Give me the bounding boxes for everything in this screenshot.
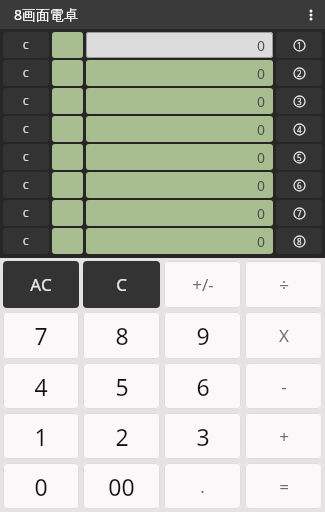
button[interactable]: X [245,312,322,359]
button[interactable]: 0 [86,172,273,198]
button[interactable]: 5 [83,363,160,409]
staticText: 0 [257,120,266,139]
button[interactable]: 4 [3,363,79,409]
button[interactable]: Memory 5 [52,144,83,170]
button[interactable]: Screen 5 [276,144,322,170]
button[interactable]: +/- [164,261,241,308]
staticText: 0 [257,148,266,167]
staticText: + [279,425,289,448]
button[interactable]: Screen 8 [276,228,322,254]
staticText: 2 [115,421,129,452]
button[interactable]: Memory 8 [52,228,83,254]
button[interactable]: C [3,88,49,114]
staticText: ÷ [279,273,289,296]
staticText: 0 [257,176,266,195]
button[interactable]: 7 [3,312,79,359]
staticText: C [23,39,29,51]
staticText: 00 [108,471,135,502]
staticText: = [279,475,289,498]
staticText: 8画面電卓 [14,5,79,24]
button[interactable]: Memory 4 [52,116,83,142]
staticText: 2 [297,68,302,79]
button[interactable]: 3 [164,413,241,459]
staticText: 7 [297,208,302,219]
staticText: AC [30,273,52,296]
staticText: 0 [257,92,266,111]
staticText: 1 [297,40,302,51]
staticText: 6 [297,180,302,191]
button[interactable]: 0 [86,228,273,254]
staticText: 4 [297,124,302,135]
staticText: 0 [257,232,266,251]
button[interactable]: Screen 7 [276,200,322,226]
button[interactable]: C [3,228,49,254]
staticText: C [23,123,29,135]
staticText: . [200,475,205,498]
button[interactable]: = [245,463,322,509]
button[interactable]: C [3,32,49,58]
staticText: C [23,151,29,163]
button[interactable]: . [164,463,241,509]
button[interactable]: 0 [86,200,273,226]
staticText: 6 [196,371,210,402]
button[interactable]: 6 [164,363,241,409]
button[interactable]: Memory 7 [52,200,83,226]
button[interactable]: ÷ [245,261,322,308]
staticText: C [23,207,29,219]
button[interactable]: 2 [83,413,160,459]
staticText: 0 [257,204,266,223]
button[interactable]: 0 [86,88,273,114]
staticText: C [23,95,29,107]
button[interactable]: + [245,413,322,459]
button[interactable]: Memory 2 [52,60,83,86]
staticText: 3 [297,96,302,107]
button[interactable]: Screen 6 [276,172,322,198]
button[interactable]: Screen 3 [276,88,322,114]
button[interactable]: C [3,116,49,142]
button[interactable]: 0 [86,60,273,86]
staticText: - [281,375,287,398]
button[interactable]: 0 [86,32,273,58]
staticText: 8 [297,236,302,247]
button[interactable]: Memory 3 [52,88,83,114]
button[interactable]: C [83,261,160,308]
button[interactable]: 00 [83,463,160,509]
staticText: 0 [257,64,266,83]
button[interactable]: Screen 1 [276,32,322,58]
button[interactable]: Memory 1 [52,32,83,58]
button[interactable]: 1 [3,413,79,459]
button[interactable]: C [3,144,49,170]
staticText: 3 [196,421,210,452]
staticText: 5 [115,371,129,402]
button[interactable]: C [3,60,49,86]
staticText: 0 [257,36,266,55]
staticText: C [23,67,29,79]
button[interactable]: Memory 6 [52,172,83,198]
button[interactable]: - [245,363,322,409]
button[interactable]: More options [297,0,325,29]
staticText: 5 [297,152,302,163]
button[interactable]: AC [3,261,79,308]
staticText: 9 [196,320,210,351]
button[interactable]: 0 [86,144,273,170]
button[interactable]: 0 [3,463,79,509]
button[interactable]: 0 [86,116,273,142]
staticText: C [23,235,29,247]
staticText: C [23,179,29,191]
staticText: C [116,273,127,296]
button[interactable]: C [3,172,49,198]
button[interactable]: Screen 2 [276,60,322,86]
button[interactable]: C [3,200,49,226]
staticText: 4 [34,371,48,402]
button[interactable]: Screen 4 [276,116,322,142]
staticText: 1 [34,421,48,452]
staticText: +/- [192,273,214,296]
button[interactable]: 9 [164,312,241,359]
button[interactable]: 8 [83,312,160,359]
staticText: 8 [115,320,129,351]
staticText: X [279,324,289,347]
staticText: 0 [34,471,48,502]
staticText: 7 [34,320,48,351]
